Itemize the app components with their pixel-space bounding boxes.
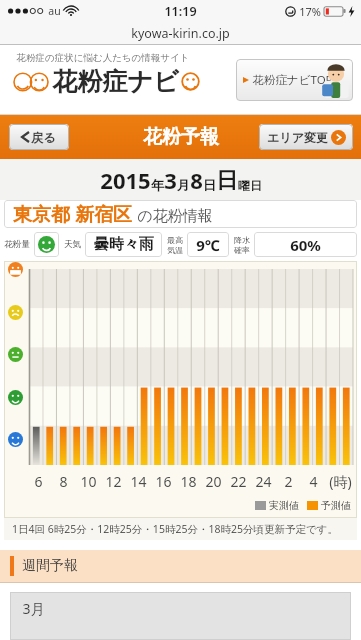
staticText: 60% xyxy=(290,235,321,255)
staticText: 気温 xyxy=(167,245,183,255)
staticText: 12 xyxy=(105,472,122,491)
button[interactable]: エリア変更 xyxy=(259,124,353,150)
staticText: 10 xyxy=(80,472,97,491)
staticText: 6 xyxy=(34,472,43,491)
staticText: 最高 xyxy=(167,235,183,245)
staticText: エリア変更 xyxy=(267,130,328,145)
staticText: 戻る xyxy=(31,130,56,145)
staticText: 8 xyxy=(190,165,203,195)
staticText: 花粉症ナビTOP xyxy=(252,72,333,88)
staticText: 2015 xyxy=(100,165,151,195)
button[interactable]: 戻る xyxy=(9,124,69,150)
staticText: 8 xyxy=(59,472,68,491)
staticText: 9℃ xyxy=(196,235,220,255)
staticText: 予測値 xyxy=(321,499,351,512)
staticText: 17% xyxy=(299,4,321,19)
staticText: の花粉情報 xyxy=(137,207,213,226)
staticText: 1日4回 6時25分・12時25分・15時25分・18時25分頃更新予定です。 xyxy=(12,522,338,536)
staticText: 11:19 xyxy=(164,3,197,20)
staticText: kyowa-kirin.co.jp xyxy=(131,25,230,42)
staticText: 日 xyxy=(203,177,216,193)
staticText: (時) xyxy=(329,472,352,491)
staticText: 4 xyxy=(309,472,318,491)
staticText: 24 xyxy=(255,472,272,491)
staticText: au xyxy=(48,4,61,18)
button[interactable]: 花粉症ナビTOP xyxy=(236,59,353,101)
staticText: 20 xyxy=(205,472,222,491)
staticText: 花粉症ナビ xyxy=(52,66,179,97)
staticText: 22 xyxy=(230,472,247,491)
staticText: 日 xyxy=(216,167,238,195)
staticText: 曜日 xyxy=(238,178,262,193)
staticText: 18 xyxy=(180,472,197,491)
staticText: 花粉予報 xyxy=(143,125,219,149)
staticText: 週間予報 xyxy=(22,557,78,575)
staticText: 14 xyxy=(130,472,147,491)
staticText: 3月 xyxy=(22,599,45,618)
staticText: 実測値 xyxy=(269,499,299,512)
staticText: 東京都 新宿区 xyxy=(13,201,132,227)
staticText: 降水 xyxy=(234,235,250,245)
staticText: 曇時々雨 xyxy=(94,235,154,254)
staticText: 16 xyxy=(155,472,172,491)
staticText: 2 xyxy=(284,472,293,491)
staticText: 花粉量 xyxy=(4,239,30,250)
staticText: 月 xyxy=(177,177,190,193)
staticText: 確率 xyxy=(234,245,250,255)
staticText: 花粉症の症状に悩む人たちの情報サイト xyxy=(16,52,190,64)
staticText: 年 xyxy=(151,177,164,193)
staticText: 天気 xyxy=(64,239,81,250)
staticText: 3 xyxy=(164,165,177,195)
